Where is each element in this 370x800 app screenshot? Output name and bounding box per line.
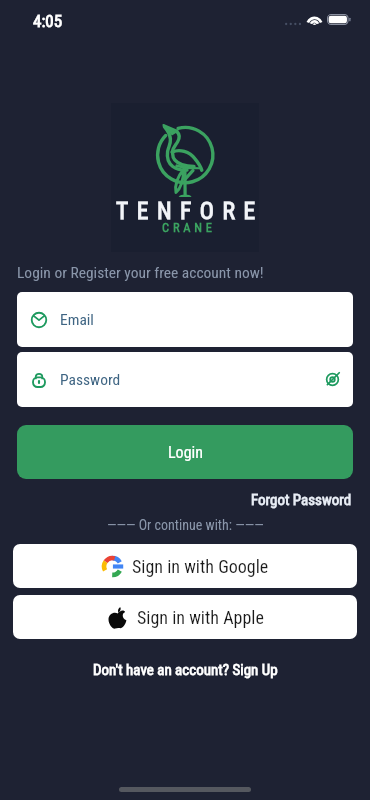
staticText: CRANE [162,220,216,235]
button[interactable]: Show password [325,372,340,387]
button[interactable]: Sign in with Google [13,544,357,588]
staticText: 4:05 [33,11,63,31]
staticText: TENFORE [116,197,264,225]
staticText: Sign in with Apple [137,607,264,628]
button[interactable]: Sign in with Apple [13,595,357,639]
button[interactable]: Password [17,352,353,407]
staticText: Login or Register your free account now! [17,264,264,282]
staticText: ——— Or continue with: ——— [107,517,264,533]
button[interactable]: Don't have an account? Sign Up [93,661,278,679]
button[interactable]: Forgot Password [251,491,352,509]
button[interactable]: Email [17,292,353,347]
staticText: Login [168,443,203,462]
staticText: Email [60,311,94,329]
button[interactable]: Login [17,425,353,479]
staticText: Sign in with Google [132,556,269,577]
staticText: Password [60,371,121,389]
